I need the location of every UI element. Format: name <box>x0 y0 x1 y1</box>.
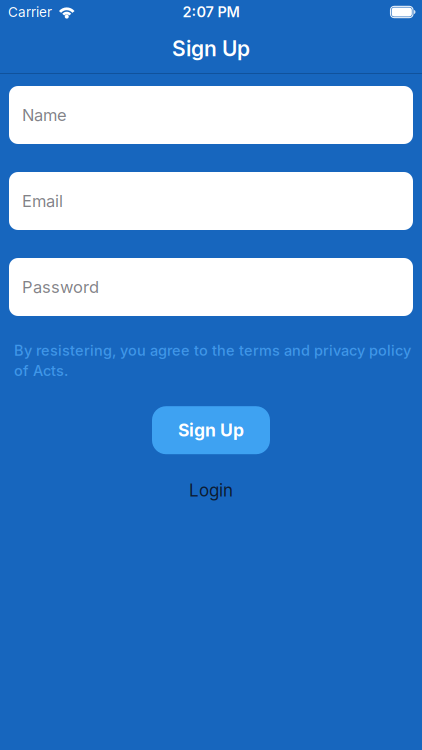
staticText: Name <box>22 105 67 125</box>
button[interactable]: Email <box>9 172 413 230</box>
staticText: Password <box>22 277 99 297</box>
staticText: Email <box>22 191 63 211</box>
staticText: By resistering, you agree to the terms a… <box>14 342 411 379</box>
staticText: Login <box>189 480 233 500</box>
button[interactable]: Password <box>9 258 413 316</box>
button[interactable]: Sign Up <box>152 406 270 454</box>
staticText: Carrier <box>8 4 52 20</box>
staticText: 2:07 PM <box>182 3 239 20</box>
button[interactable]: Name <box>9 86 413 144</box>
button[interactable]: Login <box>189 480 233 500</box>
staticText: Sign Up <box>172 36 250 61</box>
staticText: Sign Up <box>178 420 244 440</box>
